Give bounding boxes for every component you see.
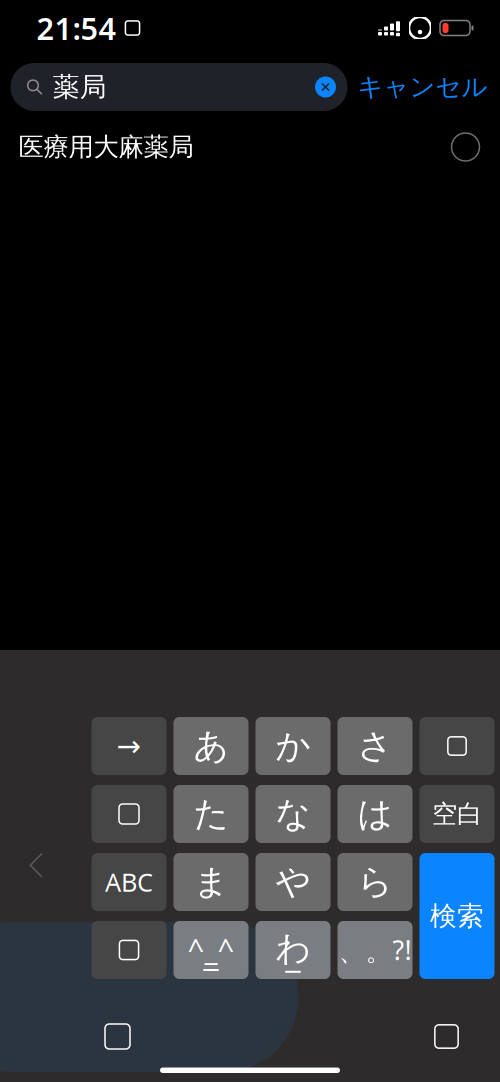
staticText: キャンセル xyxy=(357,71,487,102)
button[interactable]: ^_^ xyxy=(173,921,248,979)
staticText: 空白 xyxy=(432,798,482,829)
staticText: さ xyxy=(357,725,392,767)
staticText: は xyxy=(357,793,392,835)
button[interactable]: た xyxy=(173,785,248,843)
button[interactable]: 検索テキストを消去 xyxy=(310,72,340,102)
staticText: か xyxy=(275,725,310,767)
button[interactable]: arrow.counterclockwise xyxy=(91,785,166,843)
staticText: ら xyxy=(357,861,392,903)
button[interactable]: 音声入力 xyxy=(419,1009,473,1063)
button[interactable]: キーボードを切り替え xyxy=(90,1009,144,1063)
button[interactable]: ら xyxy=(337,853,412,911)
button[interactable]: は xyxy=(337,785,412,843)
staticText: 検索 xyxy=(430,900,484,932)
button[interactable]: や xyxy=(255,853,330,911)
button[interactable]: 検索 xyxy=(419,853,494,979)
button[interactable]: ABC xyxy=(91,853,166,911)
staticText: 、。?! xyxy=(338,932,411,968)
staticText: あ xyxy=(193,725,228,767)
staticText: わ xyxy=(275,927,310,970)
button[interactable]: わ xyxy=(255,921,330,979)
staticText: → xyxy=(116,729,141,763)
button[interactable]: ま xyxy=(173,853,248,911)
staticText: ^_^ xyxy=(187,929,234,968)
staticText: 医療用大麻薬局 xyxy=(18,131,193,162)
staticText: ABC xyxy=(105,865,153,899)
staticText: な xyxy=(275,793,310,835)
staticText: ま xyxy=(193,861,228,903)
staticText: 21:54 xyxy=(36,8,116,48)
staticText: 薬局 xyxy=(53,71,107,103)
staticText: や xyxy=(275,861,310,903)
button[interactable]: か xyxy=(255,717,330,775)
button[interactable]: 空白 xyxy=(419,785,494,843)
button[interactable]: delete.left xyxy=(419,717,494,775)
button[interactable]: 、。?! xyxy=(337,921,412,979)
button[interactable]: → xyxy=(91,717,166,775)
button[interactable]: あ xyxy=(173,717,248,775)
button[interactable]: 医療用大麻薬局 xyxy=(0,118,500,176)
staticText: た xyxy=(193,793,228,835)
button[interactable]: さ xyxy=(337,717,412,775)
button[interactable]: な xyxy=(255,785,330,843)
button[interactable]: face.smiling.fill xyxy=(91,921,166,979)
button[interactable]: キャンセル xyxy=(357,63,497,110)
